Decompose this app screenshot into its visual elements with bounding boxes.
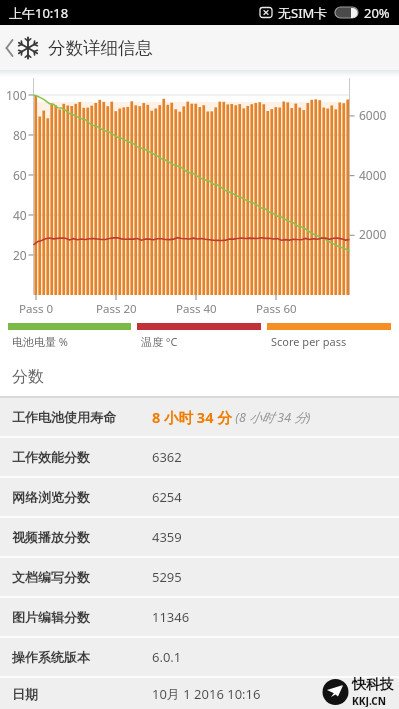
staticText: 11346 bbox=[152, 608, 190, 626]
button[interactable]: 视频播放分数 bbox=[12, 518, 399, 556]
staticText: 快科技 bbox=[352, 676, 394, 694]
staticText: 图片编辑分数 bbox=[12, 609, 90, 625]
button[interactable] bbox=[2, 28, 16, 68]
staticText: 5295 bbox=[152, 568, 182, 586]
button[interactable]: 图片编辑分数 bbox=[12, 598, 399, 636]
staticText: Pass 20 bbox=[96, 301, 137, 317]
staticText: 分数 bbox=[12, 367, 44, 387]
staticText: Score per pass bbox=[271, 334, 347, 349]
staticText: Pass 0 bbox=[19, 301, 53, 317]
staticText: 6254 bbox=[152, 488, 182, 506]
staticText: 工作电池使用寿命 bbox=[12, 409, 116, 425]
staticText: 分数详细信息 bbox=[48, 37, 153, 59]
staticText: 8 小时 34 分 bbox=[152, 407, 232, 427]
staticText: 60 bbox=[13, 167, 27, 183]
staticText: 20% bbox=[364, 4, 390, 22]
staticText: 操作系统版本 bbox=[12, 649, 90, 665]
staticText: 文档编写分数 bbox=[12, 569, 90, 585]
staticText: 20 bbox=[13, 247, 27, 263]
staticText: 6.0.1 bbox=[152, 648, 182, 666]
button[interactable]: 工作电池使用寿命 bbox=[12, 398, 399, 436]
staticText: 100 bbox=[6, 87, 27, 103]
staticText: 上午10:18 bbox=[9, 4, 69, 22]
button[interactable]: 操作系统版本 bbox=[12, 638, 399, 676]
staticText: 4359 bbox=[152, 528, 182, 546]
staticText: 温度 °C bbox=[141, 334, 178, 349]
staticText: 10月 1 2016 10:16 bbox=[152, 685, 261, 703]
staticText: 2000 bbox=[359, 226, 387, 242]
button[interactable]: 文档编写分数 bbox=[12, 558, 399, 596]
staticText: KKJ.CN bbox=[352, 694, 386, 707]
staticText: 无SIM卡 bbox=[278, 4, 328, 22]
staticText: 电池电量 % bbox=[12, 334, 69, 349]
staticText: 6362 bbox=[152, 448, 182, 466]
button[interactable]: 工作效能分数 bbox=[12, 438, 399, 476]
staticText: 6000 bbox=[359, 107, 387, 123]
staticText: 80 bbox=[13, 127, 27, 143]
staticText: 日期 bbox=[12, 686, 38, 702]
staticText: 40 bbox=[13, 207, 27, 223]
button[interactable]: 日期 bbox=[12, 678, 399, 709]
staticText: 网络浏览分数 bbox=[12, 489, 90, 505]
staticText: 4000 bbox=[359, 167, 387, 183]
staticText: 工作效能分数 bbox=[12, 449, 90, 465]
staticText: (8 小时 34 分) bbox=[232, 409, 311, 426]
staticText: 视频播放分数 bbox=[12, 529, 90, 545]
staticText: Pass 60 bbox=[256, 301, 297, 317]
staticText: Pass 40 bbox=[176, 301, 217, 317]
button[interactable]: 网络浏览分数 bbox=[12, 478, 399, 516]
